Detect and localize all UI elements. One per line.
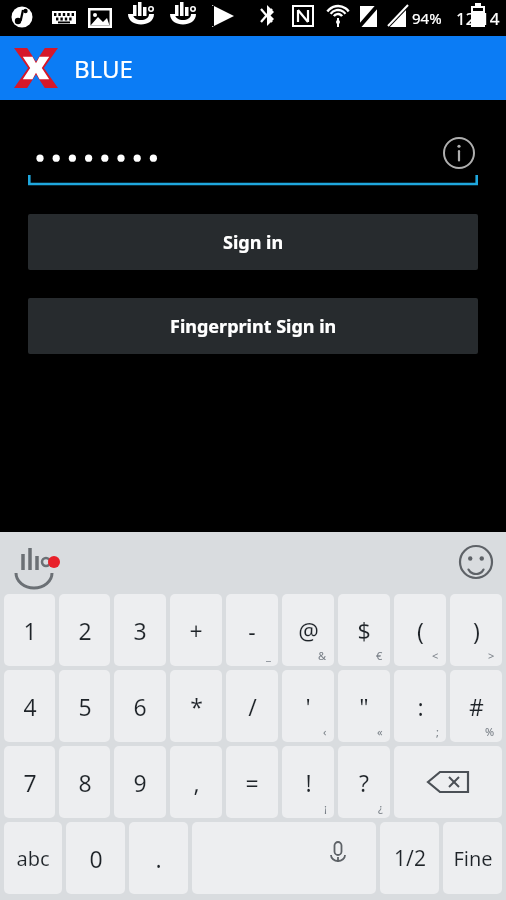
staticText: Sign in xyxy=(223,230,284,255)
button[interactable]: - xyxy=(226,594,278,666)
button[interactable]: Emoji xyxy=(458,544,494,580)
staticText: ; xyxy=(436,724,439,739)
staticText: ‹ xyxy=(323,724,327,739)
button[interactable]: Fingerprint Sign in xyxy=(28,298,478,354)
staticText: ¡ xyxy=(324,800,327,815)
staticText: 94% xyxy=(412,8,442,28)
button[interactable]: ? xyxy=(338,746,390,818)
staticText: 7 xyxy=(23,767,37,798)
button[interactable]: 8 xyxy=(59,746,110,818)
button[interactable]: 2 xyxy=(59,594,110,666)
staticText: 12:14 xyxy=(456,7,500,30)
button[interactable]: 3 xyxy=(114,594,166,666)
staticText: 4 xyxy=(23,691,37,722)
staticText: € xyxy=(376,648,383,663)
button[interactable]: 7 xyxy=(4,746,55,818)
button[interactable]: @ xyxy=(282,594,334,666)
staticText: 1 xyxy=(23,615,37,646)
button[interactable]: 4 xyxy=(4,670,55,742)
staticText: ? xyxy=(359,767,369,798)
staticText: , xyxy=(193,767,200,798)
staticText: = xyxy=(245,767,259,798)
button[interactable]: Password info xyxy=(28,128,478,186)
staticText: / xyxy=(248,691,257,722)
button[interactable]: Fine xyxy=(443,822,502,894)
staticText: 6 xyxy=(133,691,147,722)
button[interactable]: # xyxy=(450,670,502,742)
staticText: 2 xyxy=(78,615,92,646)
button[interactable] xyxy=(394,746,502,818)
staticText: & xyxy=(318,648,327,663)
button[interactable]: = xyxy=(226,746,278,818)
button[interactable]: , xyxy=(170,746,222,818)
staticText: - xyxy=(248,615,256,646)
button[interactable]: ! xyxy=(282,746,334,818)
staticText: # xyxy=(469,691,484,722)
button[interactable]: 9 xyxy=(114,746,166,818)
button[interactable]: Password info xyxy=(442,136,476,170)
button[interactable]: Input method settings xyxy=(8,540,52,584)
staticText: + xyxy=(189,615,203,646)
button[interactable]: 1/2 xyxy=(380,822,439,894)
button[interactable]: 5 xyxy=(59,670,110,742)
button[interactable]: Sign in xyxy=(28,214,478,270)
button[interactable]: ) xyxy=(450,594,502,666)
staticText: . xyxy=(155,843,162,874)
button[interactable]: ( xyxy=(394,594,446,666)
staticText: 9 xyxy=(133,767,147,798)
button[interactable]: 6 xyxy=(114,670,166,742)
staticText: 3 xyxy=(133,615,147,646)
other: Space xyxy=(190,820,378,896)
staticText: 5 xyxy=(78,691,92,722)
button[interactable] xyxy=(192,822,376,894)
button[interactable]: " xyxy=(338,670,390,742)
button[interactable]: . xyxy=(129,822,188,894)
button[interactable]: 1 xyxy=(4,594,55,666)
button[interactable]: * xyxy=(170,670,222,742)
button[interactable]: / xyxy=(226,670,278,742)
staticText: 8 xyxy=(78,767,92,798)
staticText: @ xyxy=(298,615,319,646)
button[interactable]: 0 xyxy=(66,822,125,894)
staticText: abc xyxy=(16,845,50,872)
button[interactable]: ' xyxy=(282,670,334,742)
staticText: ' xyxy=(305,691,311,722)
staticText: « xyxy=(377,724,383,739)
staticText: : xyxy=(417,691,424,722)
staticText: _ xyxy=(266,648,271,663)
staticText: < xyxy=(432,648,439,663)
staticText: ¿ xyxy=(378,800,383,815)
staticText: BLUE xyxy=(74,52,133,85)
staticText: % xyxy=(485,724,495,739)
other: Backspace xyxy=(392,744,504,820)
staticText: ( xyxy=(417,615,424,646)
button[interactable]: $ xyxy=(338,594,390,666)
staticText: ! xyxy=(305,767,312,798)
staticText: > xyxy=(488,648,495,663)
staticText: 1/2 xyxy=(394,844,426,873)
staticText: Fine xyxy=(453,845,493,872)
staticText: ) xyxy=(473,615,480,646)
button[interactable]: abc xyxy=(4,822,62,894)
button[interactable]: : xyxy=(394,670,446,742)
staticText: $ xyxy=(357,615,371,646)
staticText: " xyxy=(359,691,369,722)
staticText: * xyxy=(190,691,203,722)
button[interactable]: + xyxy=(170,594,222,666)
staticText: Fingerprint Sign in xyxy=(170,314,337,339)
staticText: 0 xyxy=(89,843,103,874)
